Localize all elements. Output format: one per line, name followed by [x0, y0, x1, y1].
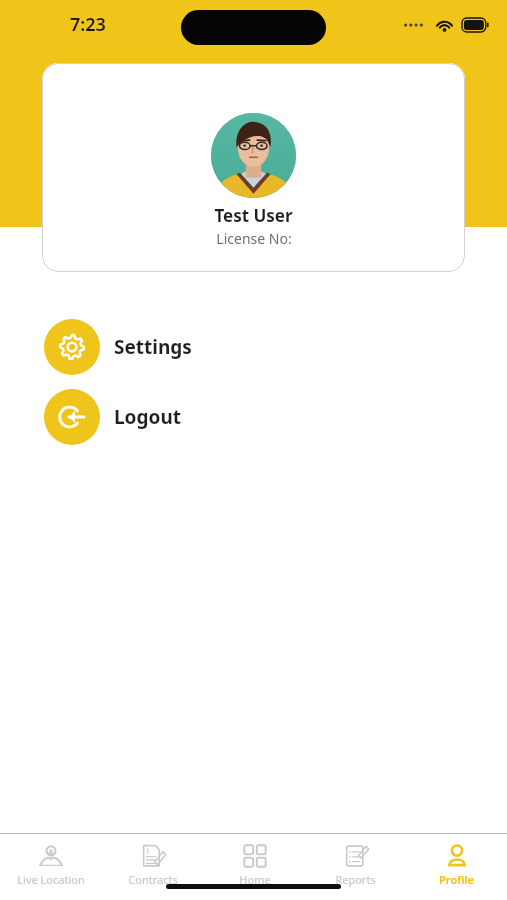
button[interactable]: Test User: [42, 63, 465, 272]
button[interactable]: Profile: [406, 834, 507, 900]
button[interactable]: Settings: [44, 318, 304, 376]
other: Settings: [44, 319, 100, 375]
button[interactable]: Live Location: [0, 834, 102, 900]
staticText: Live Location: [17, 872, 85, 887]
staticText: Reports: [335, 872, 376, 887]
button[interactable]: Home: [204, 834, 305, 900]
staticText: Profile: [439, 872, 474, 887]
staticText: Logout: [114, 404, 181, 430]
button[interactable]: Contracts: [102, 834, 204, 900]
staticText: Home: [239, 872, 271, 887]
staticText: 7:23: [70, 12, 106, 37]
staticText: Settings: [114, 334, 192, 360]
other: Logout: [44, 389, 100, 445]
button[interactable]: Reports: [305, 834, 406, 900]
button[interactable]: Logout: [44, 388, 304, 446]
staticText: License No:: [216, 229, 292, 248]
staticText: Test User: [214, 204, 293, 227]
staticText: Contracts: [128, 872, 178, 887]
